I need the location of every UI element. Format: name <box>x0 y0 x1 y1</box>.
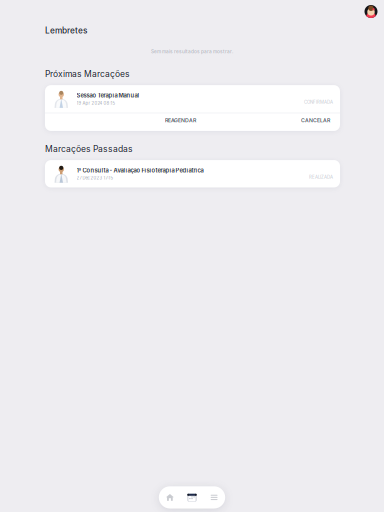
button[interactable]: REAGENDAR <box>165 113 196 127</box>
staticText: Próximas Marcações <box>45 69 130 79</box>
button[interactable]: Calendar <box>181 486 203 508</box>
staticText: Sessão Terapia Manual <box>76 92 139 99</box>
staticText: REALIZADA <box>309 174 333 180</box>
staticText: 27 Dec 2023 17:15 <box>76 175 113 181</box>
button[interactable]: Menu <box>203 486 225 508</box>
staticText: Sem mais resultados para mostrar. <box>151 48 233 54</box>
staticText: REAGENDAR <box>165 117 196 124</box>
staticText: CONFIRMADA <box>304 100 333 105</box>
staticText: CANCELAR <box>301 117 330 124</box>
staticText: Lembretes <box>45 25 87 35</box>
staticText: 19 Apr 2024 08:15 <box>76 101 115 106</box>
staticText: Marcações Passadas <box>45 144 133 154</box>
button[interactable]: Profile <box>364 5 377 18</box>
button[interactable]: Home <box>159 486 181 508</box>
button[interactable]: CANCELAR <box>301 113 330 127</box>
staticText: 1ª Consulta - Avaliação Fisioterapia Ped… <box>76 167 203 174</box>
